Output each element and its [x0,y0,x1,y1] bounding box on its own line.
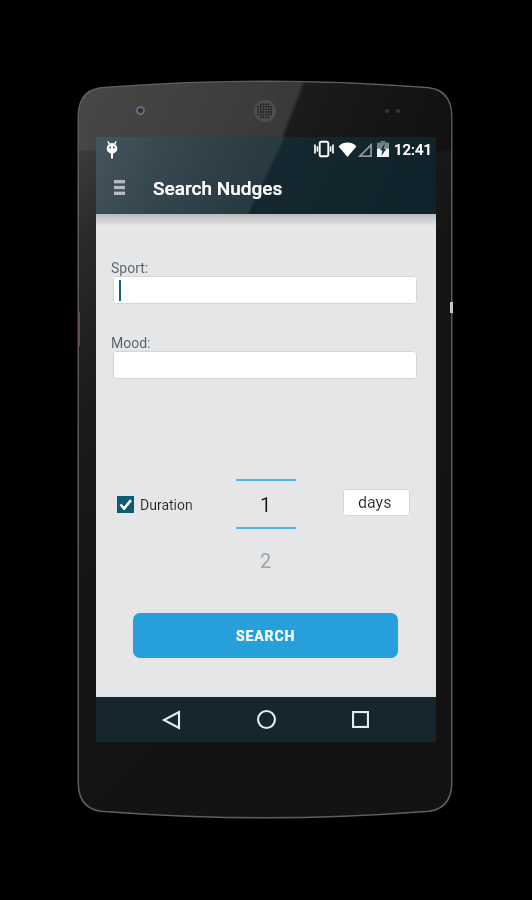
staticText: Duration [140,497,193,513]
button[interactable]: Recent apps [336,697,384,742]
staticText: 2 [260,549,272,572]
button[interactable]: days [343,489,410,516]
button[interactable]: Back [147,697,195,742]
staticText: Search Nudges [153,177,283,199]
button[interactable]: 2 [236,537,296,583]
button[interactable]: SEARCH [133,613,398,658]
staticText: Sport: [111,260,149,276]
button[interactable]: 1 [236,481,296,527]
staticText: 1 [260,493,272,516]
button[interactable]: Duration [117,496,193,513]
staticText: 12:41 [394,141,433,159]
button[interactable] [113,351,417,379]
staticText: SEARCH [236,628,296,644]
button[interactable] [113,276,417,304]
button[interactable]: Open navigation drawer [105,173,133,201]
button[interactable]: Home [242,697,290,742]
staticText: days [358,493,392,512]
staticText: Mood: [111,335,151,351]
